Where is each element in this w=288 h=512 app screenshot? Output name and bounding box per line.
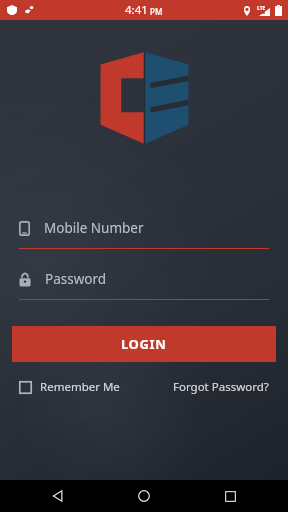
staticText: Forgot Password?	[173, 379, 269, 395]
staticText: Remember Me	[40, 379, 120, 395]
staticText: 4:41	[125, 2, 148, 18]
other: Password	[19, 272, 31, 287]
button[interactable]: Remember Me	[19, 379, 120, 395]
staticText: Password	[45, 270, 107, 288]
staticText: LOGIN	[121, 335, 167, 353]
button[interactable]: Home	[126, 480, 162, 512]
staticText: Mobile Number	[44, 219, 144, 237]
staticText: LTE	[257, 5, 266, 12]
button[interactable]: Mobile number	[19, 216, 269, 249]
button[interactable]: LOGIN	[12, 326, 276, 362]
other: Mobile number	[19, 221, 30, 236]
staticText: PM	[150, 6, 163, 17]
button[interactable]: Password	[19, 267, 269, 300]
button[interactable]: Recent apps	[212, 480, 248, 512]
button[interactable]: Forgot Password?	[173, 379, 269, 395]
button[interactable]: Back	[40, 480, 76, 512]
